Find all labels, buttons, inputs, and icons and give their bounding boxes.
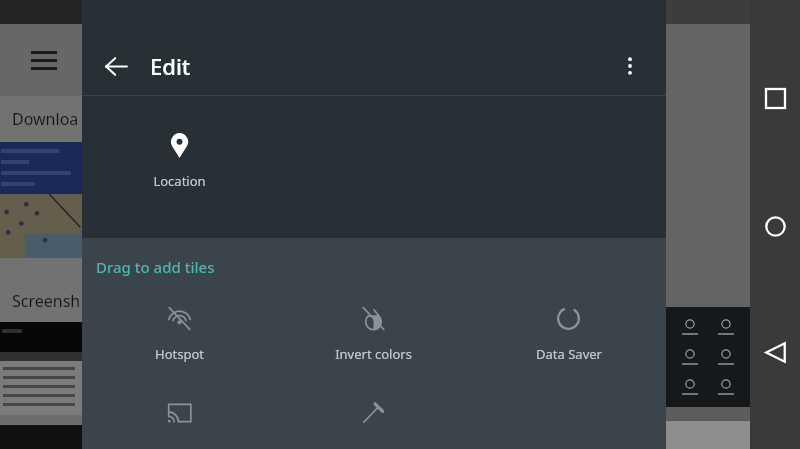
staticText: Edit: [150, 51, 191, 81]
staticText: Data Saver: [536, 345, 602, 363]
button[interactable]: Home: [750, 206, 800, 246]
staticText: Screensh: [12, 290, 81, 312]
button[interactable]: Back: [750, 332, 800, 372]
button[interactable]: [82, 397, 276, 428]
button[interactable]: Invert colors: [276, 303, 471, 365]
button[interactable]: [276, 397, 471, 428]
staticText: Downloa: [12, 108, 79, 130]
button[interactable]: Hotspot: [82, 303, 276, 365]
button[interactable]: More options: [608, 44, 652, 88]
staticText: Location: [153, 172, 206, 190]
button[interactable]: Recent apps: [750, 78, 800, 118]
button[interactable]: Location: [82, 130, 276, 192]
staticText: Drag to add tiles: [96, 257, 215, 277]
staticText: Hotspot: [155, 345, 204, 363]
button[interactable]: Navigate up: [94, 44, 138, 88]
button[interactable]: Data Saver: [471, 303, 666, 365]
staticText: Invert colors: [335, 345, 412, 363]
